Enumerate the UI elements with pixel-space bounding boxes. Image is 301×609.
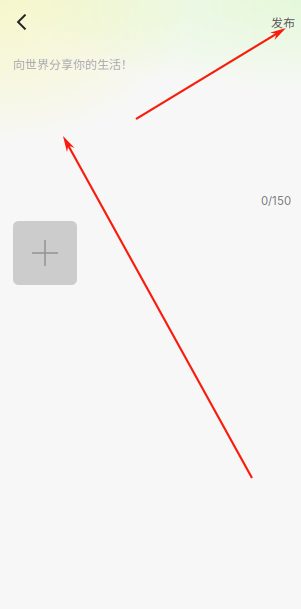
button[interactable]: Back [0, 0, 44, 44]
button[interactable]: Add photo [13, 221, 77, 285]
staticText: 发布 [271, 13, 295, 31]
staticText: 向世界分享你的生活！ [13, 55, 133, 72]
staticText: 0/150 [261, 194, 291, 208]
button[interactable]: 发布 [271, 0, 301, 44]
